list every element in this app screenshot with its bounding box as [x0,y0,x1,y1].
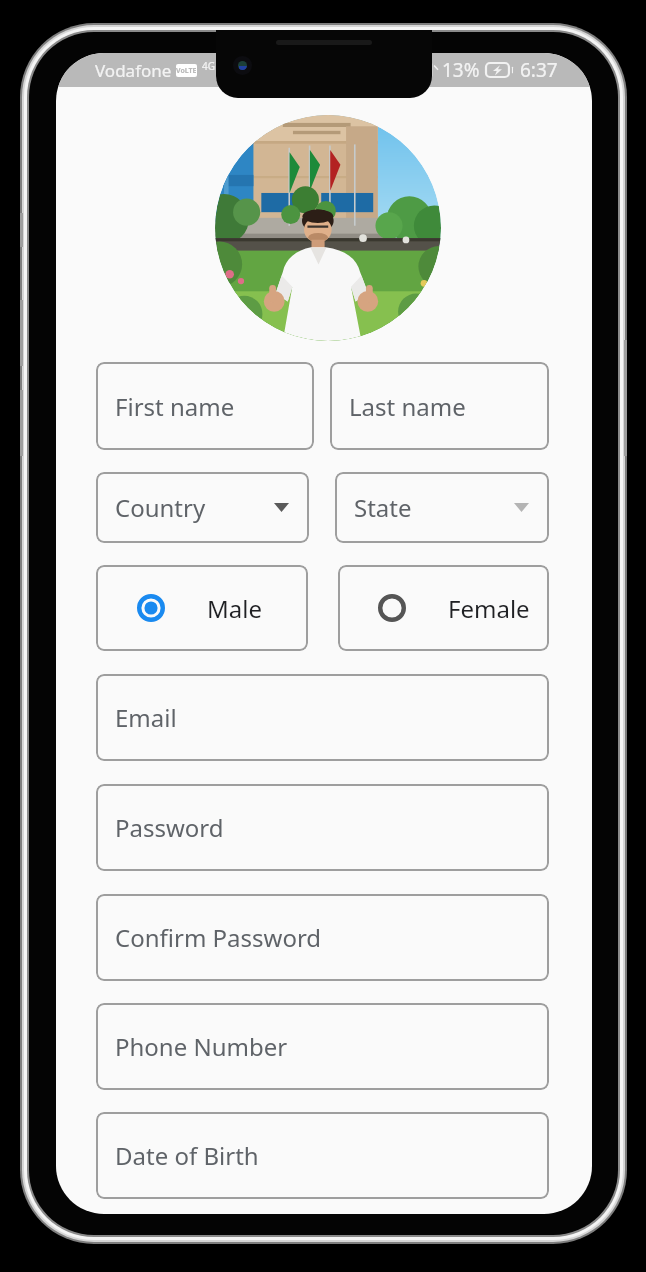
button[interactable]: State [335,472,549,543]
button[interactable]: Phone Number [96,1003,549,1090]
button[interactable]: Country [96,472,309,543]
staticText: Female [448,592,530,625]
button[interactable]: Date of Birth [96,1112,549,1199]
staticText: 4G [202,59,215,73]
button[interactable]: Confirm Password [96,894,549,981]
staticText: Vodafone [95,59,172,82]
staticText: 6:37 [520,57,558,83]
staticText: State [354,491,412,524]
staticText: Password [115,811,224,844]
staticText: Last name [349,390,466,423]
staticText: First name [115,390,235,423]
button[interactable]: Change profile photo [215,115,441,341]
button[interactable]: Female [338,565,549,651]
button[interactable]: Male [96,565,308,651]
button[interactable]: First name [96,362,314,450]
staticText: Date of Birth [115,1139,259,1172]
staticText: Email [115,701,177,734]
staticText: Phone Number [115,1030,288,1063]
button[interactable]: Password [96,784,549,871]
button[interactable]: Email [96,674,549,761]
staticText: VoLTE [176,66,197,76]
staticText: 13% [442,57,480,83]
staticText: Male [207,592,262,625]
staticText: Country [115,491,206,524]
button[interactable]: Last name [330,362,549,450]
staticText: Confirm Password [115,921,322,954]
